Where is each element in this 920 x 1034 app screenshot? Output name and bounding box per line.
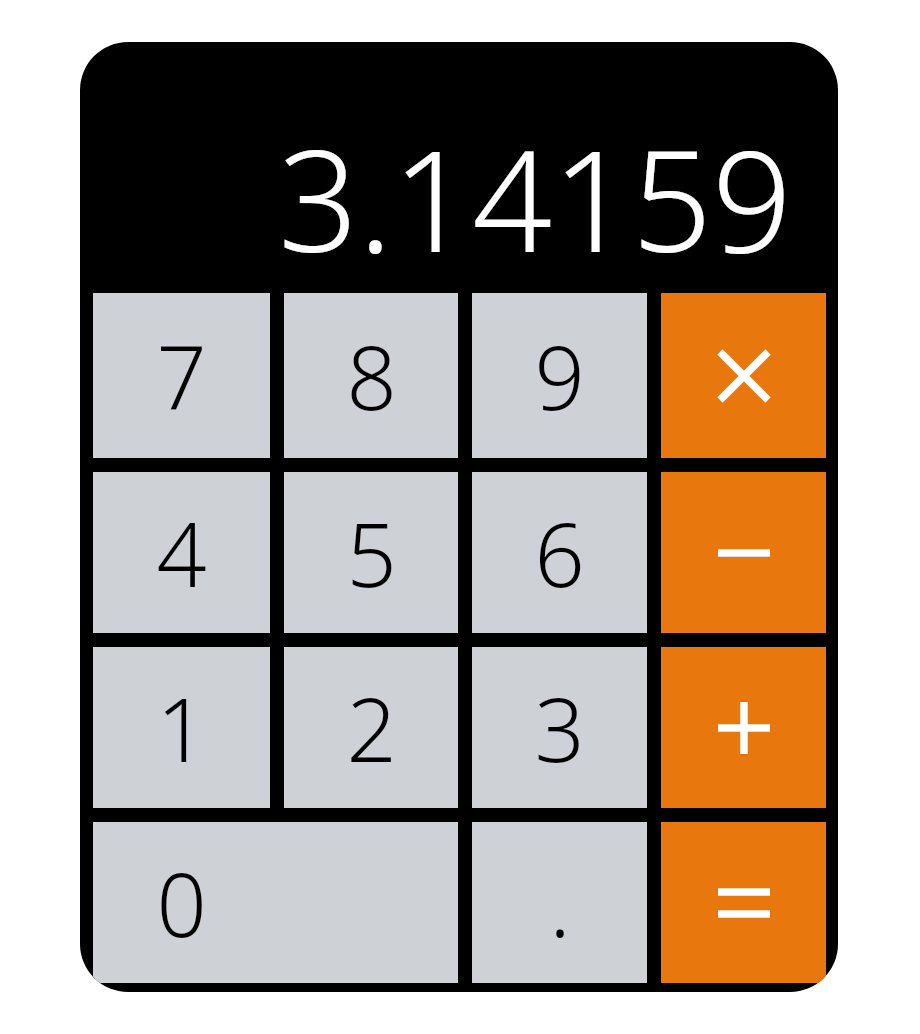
staticText: 8 — [346, 316, 397, 436]
button[interactable]: 9 — [472, 293, 647, 458]
staticText: 0 — [156, 843, 207, 963]
staticText: 3 — [534, 668, 585, 788]
button[interactable]: 6 — [472, 472, 647, 633]
button[interactable]: 4 — [93, 472, 270, 633]
staticText: 9 — [534, 316, 585, 436]
button[interactable]: 5 — [284, 472, 458, 633]
button[interactable]: 7 — [93, 293, 270, 458]
button[interactable]: . — [472, 822, 647, 983]
staticText: 3.14159 — [278, 102, 792, 293]
button[interactable]: Subtract — [661, 472, 826, 633]
button[interactable]: 0 — [93, 822, 458, 983]
button[interactable]: Add — [661, 647, 826, 808]
button[interactable]: 3 — [472, 647, 647, 808]
button[interactable]: 1 — [93, 647, 270, 808]
button[interactable]: 8 — [284, 293, 458, 458]
staticText: 6 — [534, 493, 585, 613]
staticText: 5 — [346, 493, 397, 613]
staticText: 7 — [156, 316, 207, 436]
staticText: . — [549, 843, 571, 963]
button[interactable]: 2 — [284, 647, 458, 808]
staticText: 1 — [156, 668, 207, 788]
button[interactable]: Equals — [661, 822, 826, 983]
staticText: 2 — [346, 668, 397, 788]
staticText: 4 — [156, 493, 207, 613]
button[interactable]: Multiply — [661, 293, 826, 458]
